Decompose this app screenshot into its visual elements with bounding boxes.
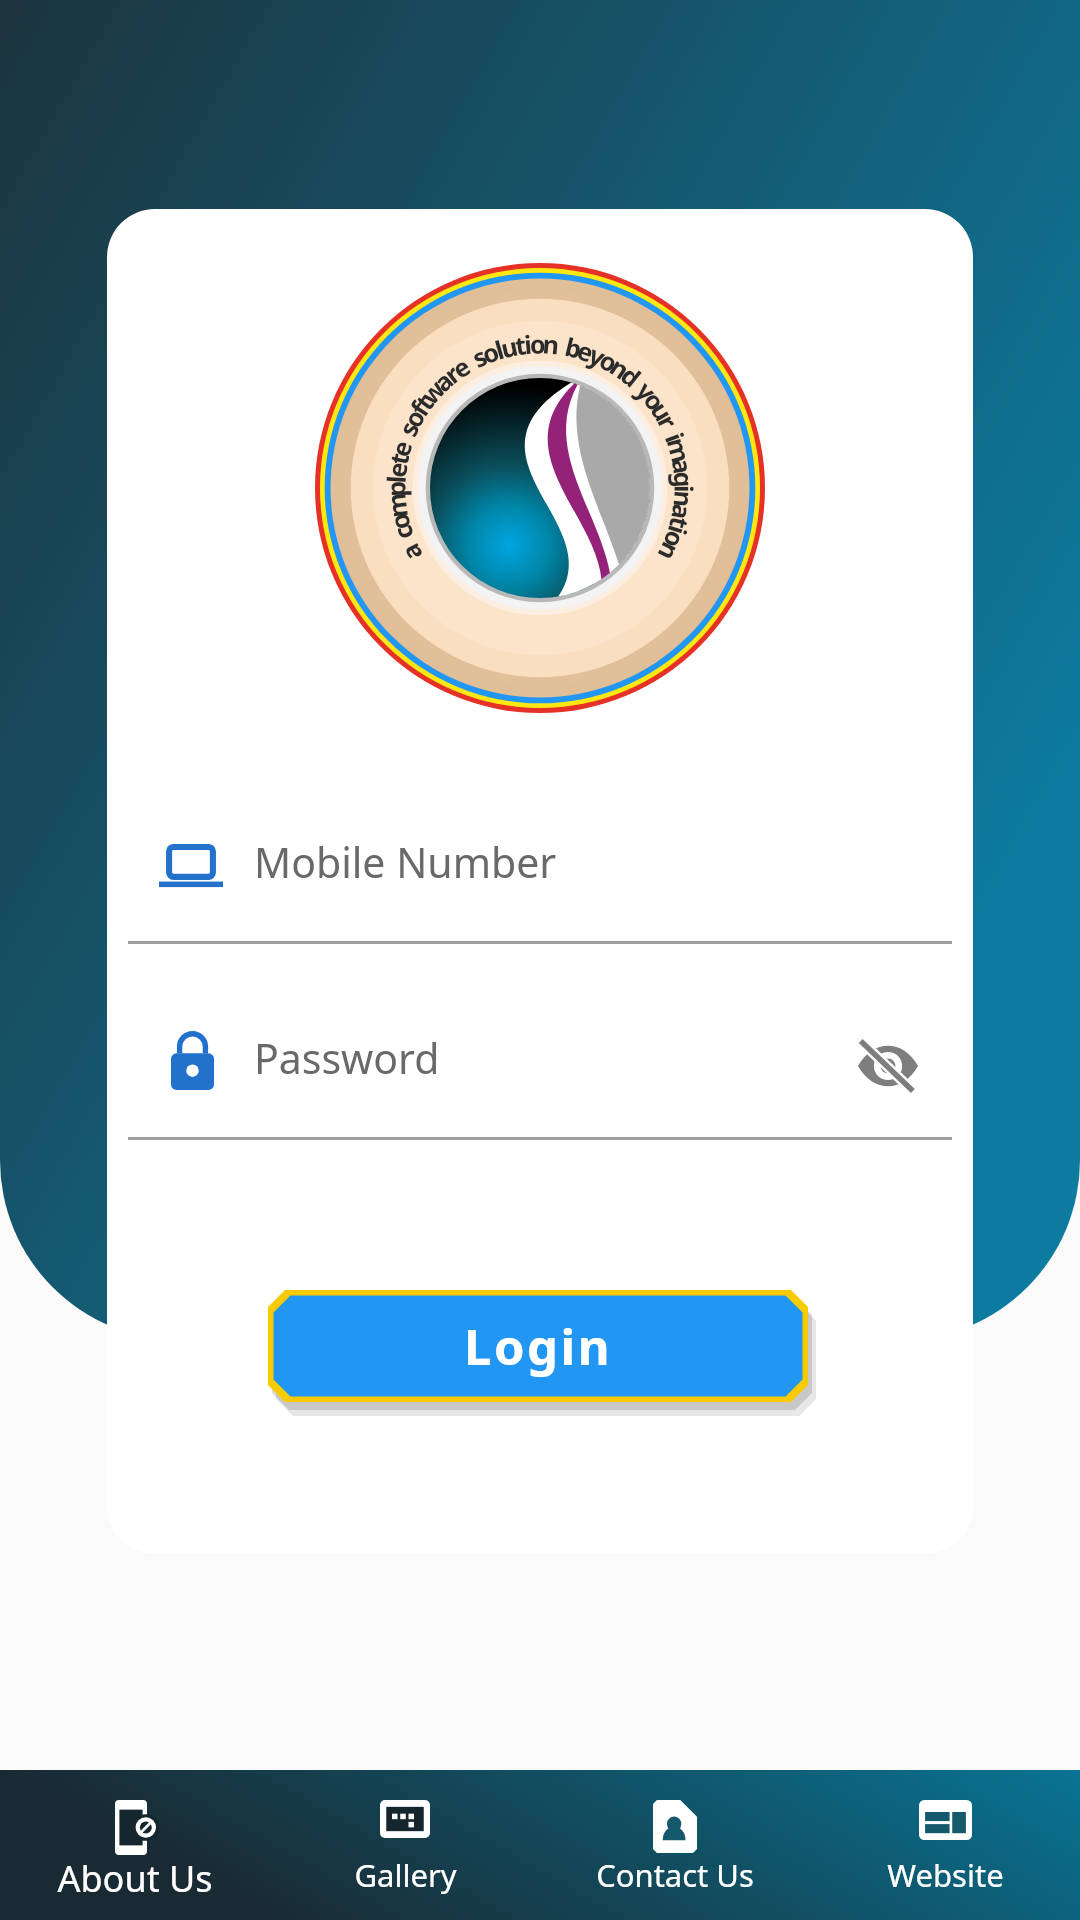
staticText: Password [254,1030,440,1086]
staticText: Contact Us [596,1854,754,1896]
button[interactable]: Gallery [270,1770,540,1920]
button[interactable]: Login [268,1290,808,1402]
button[interactable]: Mobile Number [128,820,952,940]
staticText: Login [464,1313,612,1380]
button[interactable]: Password [128,1017,952,1137]
button[interactable]: Show password [844,1022,932,1110]
staticText: Website [887,1854,1004,1896]
staticText: Mobile Number [254,834,557,890]
button[interactable]: Website [810,1770,1080,1920]
button[interactable]: About Us [0,1770,270,1920]
button[interactable]: Contact Us [540,1770,810,1920]
staticText: Gallery [354,1854,457,1896]
staticText: About Us [57,1854,213,1903]
